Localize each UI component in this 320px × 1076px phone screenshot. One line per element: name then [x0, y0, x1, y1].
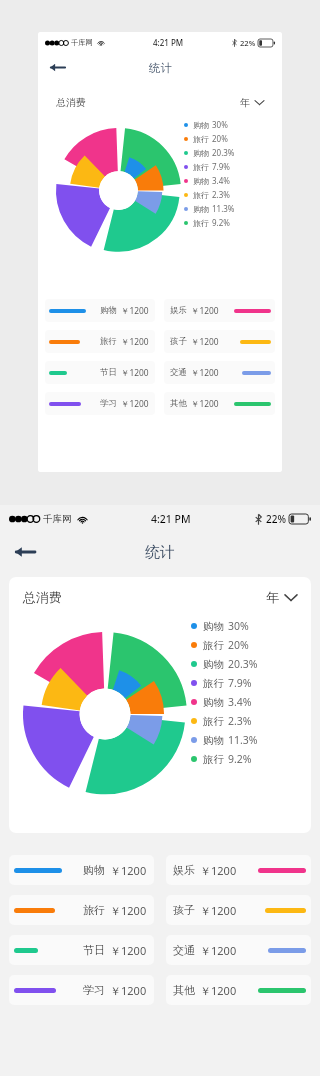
staticText: ￥1200	[121, 398, 149, 409]
staticText: 交通	[170, 367, 187, 378]
staticText: 3.4%	[212, 175, 230, 186]
staticText: 千库网	[71, 38, 93, 47]
staticText: 学习	[100, 398, 117, 409]
staticText: ￥1200	[121, 305, 149, 316]
staticText: 旅行	[193, 218, 209, 228]
staticText: 购物	[100, 305, 117, 316]
button[interactable]: 旅行	[9, 895, 154, 925]
staticText: 购物	[203, 734, 224, 747]
button[interactable]: 孩子	[166, 895, 311, 925]
button[interactable]: 其他	[164, 392, 275, 415]
staticText: 旅行	[203, 753, 224, 766]
staticText: ￥1200	[110, 943, 147, 958]
staticText: ￥1200	[121, 367, 149, 378]
staticText: ￥1200	[110, 863, 147, 878]
staticText: 9.2%	[212, 217, 230, 228]
staticText: 千库网	[43, 513, 72, 525]
button[interactable]: 娱乐	[164, 299, 275, 322]
staticText: 孩子	[173, 903, 195, 917]
staticText: 学习	[83, 983, 105, 997]
button[interactable]: 学习	[9, 975, 154, 1005]
button[interactable]: 其他	[166, 975, 311, 1005]
staticText: 9.2%	[228, 752, 252, 766]
staticText: 7.9%	[228, 676, 252, 690]
staticText: 旅行	[193, 162, 209, 172]
staticText: 娱乐	[170, 305, 187, 316]
staticText: ￥1200	[200, 983, 237, 998]
button[interactable]: 购物	[9, 855, 154, 885]
staticText: ￥1200	[200, 863, 237, 878]
staticText: ￥1200	[200, 903, 237, 918]
staticText: 20%	[212, 133, 228, 144]
button[interactable]: 交通	[166, 935, 311, 965]
staticText: 节日	[83, 943, 105, 957]
button[interactable]: 娱乐	[166, 855, 311, 885]
staticText: ￥1200	[110, 983, 147, 998]
staticText: ￥1200	[110, 903, 147, 918]
staticText: 购物	[193, 176, 209, 186]
button[interactable]: 年	[240, 96, 264, 108]
staticText: ￥1200	[200, 943, 237, 958]
staticText: 娱乐	[173, 863, 195, 877]
staticText: 购物	[193, 148, 209, 158]
staticText: 总消费	[56, 96, 86, 108]
button[interactable]: Back	[10, 537, 40, 567]
staticText: 统计	[145, 543, 175, 562]
button[interactable]: 孩子	[164, 330, 275, 353]
staticText: 旅行	[193, 134, 209, 144]
staticText: 11.3%	[212, 203, 235, 214]
staticText: 旅行	[203, 715, 224, 728]
staticText: 其他	[170, 398, 187, 409]
staticText: 30%	[212, 119, 228, 130]
staticText: ￥1200	[191, 305, 219, 316]
staticText: 旅行	[203, 677, 224, 690]
staticText: 统计	[149, 61, 172, 75]
staticText: 购物	[203, 696, 224, 709]
staticText: 其他	[173, 983, 195, 997]
staticText: 11.3%	[228, 733, 258, 747]
button[interactable]: 节日	[45, 361, 155, 384]
staticText: 孩子	[170, 336, 187, 347]
staticText: ￥1200	[191, 367, 219, 378]
staticText: 购物	[203, 658, 224, 671]
staticText: 3.4%	[228, 695, 252, 709]
staticText: 旅行	[203, 639, 224, 652]
staticText: 年	[240, 96, 250, 108]
staticText: 购物	[83, 863, 105, 877]
button[interactable]: 交通	[164, 361, 275, 384]
staticText: 总消费	[23, 589, 62, 605]
button[interactable]: 旅行	[45, 330, 155, 353]
button[interactable]: 年	[266, 589, 297, 605]
staticText: 20.3%	[228, 657, 258, 671]
staticText: 20.3%	[212, 147, 235, 158]
staticText: 4:21 PM	[151, 512, 191, 526]
staticText: 购物	[193, 204, 209, 214]
staticText: 购物	[203, 620, 224, 633]
button[interactable]: 节日	[9, 935, 154, 965]
staticText: 旅行	[100, 336, 117, 347]
staticText: 年	[266, 589, 279, 605]
staticText: 2.3%	[212, 189, 230, 200]
staticText: 20%	[228, 638, 249, 652]
staticText: ￥1200	[121, 336, 149, 347]
staticText: 旅行	[193, 190, 209, 200]
staticText: ￥1200	[191, 336, 219, 347]
staticText: 7.9%	[212, 161, 230, 172]
staticText: 购物	[193, 120, 209, 130]
staticText: 2.3%	[228, 714, 252, 728]
staticText: 4:21 PM	[153, 37, 184, 48]
staticText: 交通	[173, 943, 195, 957]
button[interactable]: 学习	[45, 392, 155, 415]
button[interactable]: 购物	[45, 299, 155, 322]
staticText: 22%	[266, 512, 286, 526]
staticText: 22%	[240, 38, 256, 48]
staticText: 旅行	[83, 903, 105, 917]
staticText: 节日	[100, 367, 117, 378]
staticText: 30%	[228, 619, 249, 633]
button[interactable]: Back	[46, 56, 69, 79]
staticText: ￥1200	[191, 398, 219, 409]
